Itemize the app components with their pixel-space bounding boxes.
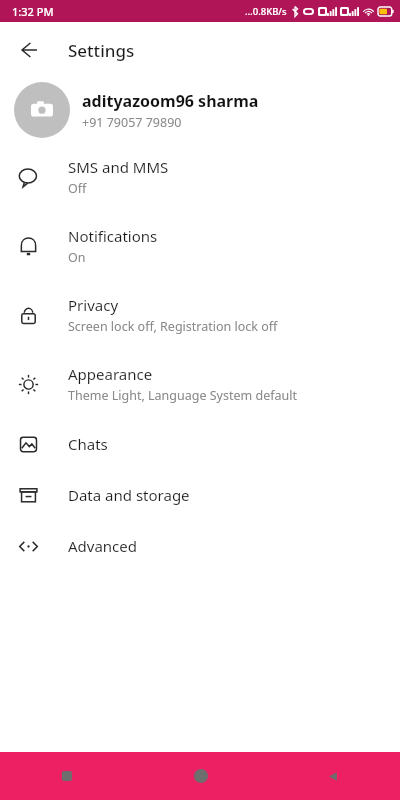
- button[interactable]: Back: [8, 30, 48, 70]
- staticText: Data and storage: [68, 485, 190, 505]
- staticText: adityazoom96 sharma: [82, 90, 259, 112]
- button[interactable]: Advanced: [0, 520, 400, 571]
- staticText: Settings: [68, 39, 135, 62]
- staticText: Advanced: [68, 536, 138, 556]
- staticText: Notifications: [68, 226, 158, 246]
- staticText: Off: [68, 180, 87, 197]
- button[interactable]: Home: [134, 752, 267, 800]
- staticText: On: [68, 249, 86, 266]
- staticText: …0.8KB/s: [245, 5, 287, 18]
- button[interactable]: Chats: [0, 418, 400, 469]
- staticText: Appearance: [68, 364, 153, 384]
- staticText: +91 79057 79890: [82, 114, 182, 131]
- button[interactable]: SMS and MMS: [0, 142, 400, 211]
- staticText: Chats: [68, 434, 108, 454]
- staticText: SMS and MMS: [68, 157, 169, 177]
- button[interactable]: Notifications: [0, 211, 400, 280]
- button[interactable]: adityazoom96 sharma: [0, 78, 400, 142]
- button[interactable]: Recent apps: [0, 752, 134, 800]
- button[interactable]: Appearance: [0, 349, 400, 418]
- button[interactable]: Data and storage: [0, 469, 400, 520]
- staticText: Theme Light, Language System default: [68, 387, 297, 404]
- staticText: Privacy: [68, 295, 119, 315]
- staticText: 1:32 PM: [12, 4, 54, 19]
- button[interactable]: Back: [267, 752, 400, 800]
- staticText: Screen lock off, Registration lock off: [68, 318, 278, 335]
- button[interactable]: Privacy: [0, 280, 400, 349]
